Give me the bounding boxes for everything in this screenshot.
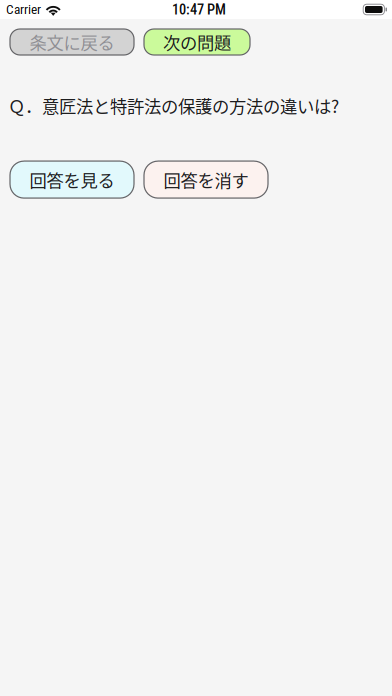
staticText: Ｑ．意匠法と特許法の保護の方法の違いは? (8, 93, 339, 118)
button[interactable]: 回答を消す (144, 161, 268, 198)
staticText: 条文に戻る (29, 29, 114, 55)
button[interactable]: 条文に戻る (10, 29, 134, 55)
button[interactable]: 回答を見る (10, 161, 134, 198)
button[interactable]: 次の問題 (144, 29, 250, 55)
staticText: 次の問題 (163, 29, 231, 55)
staticText: Carrier (6, 2, 41, 17)
staticText: 回答を消す (163, 167, 248, 192)
staticText: 回答を見る (29, 167, 114, 192)
staticText: 10:47 PM (172, 1, 226, 18)
